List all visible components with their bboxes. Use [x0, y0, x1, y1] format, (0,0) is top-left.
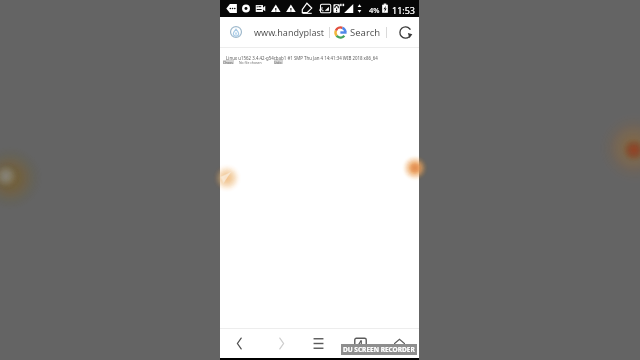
button[interactable]: Home [388, 332, 410, 354]
button[interactable]: Site info [220, 17, 419, 48]
staticText: 4% [369, 5, 380, 15]
button[interactable]: Choose File [223, 60, 234, 64]
other: Site info [229, 25, 243, 39]
staticText: Choose File [223, 60, 234, 64]
staticText: Search [350, 26, 381, 39]
staticText: 11:53 [392, 4, 416, 16]
staticText: Upload [274, 60, 283, 64]
button[interactable]: Tabs [349, 332, 371, 354]
button[interactable]: Menu [307, 332, 329, 354]
staticText: Linux u1562 3.4.42-g54cbab1 #1 SMP Thu J… [226, 55, 378, 61]
button[interactable]: Upload [274, 60, 283, 64]
other: Reload [399, 26, 412, 39]
button[interactable]: Back [228, 332, 250, 354]
button[interactable]: Forward [270, 332, 292, 354]
staticText: No file chosen [239, 60, 262, 65]
staticText: DU SCREEN RECORDER [343, 345, 415, 354]
staticText: www.handyplast [254, 26, 325, 38]
